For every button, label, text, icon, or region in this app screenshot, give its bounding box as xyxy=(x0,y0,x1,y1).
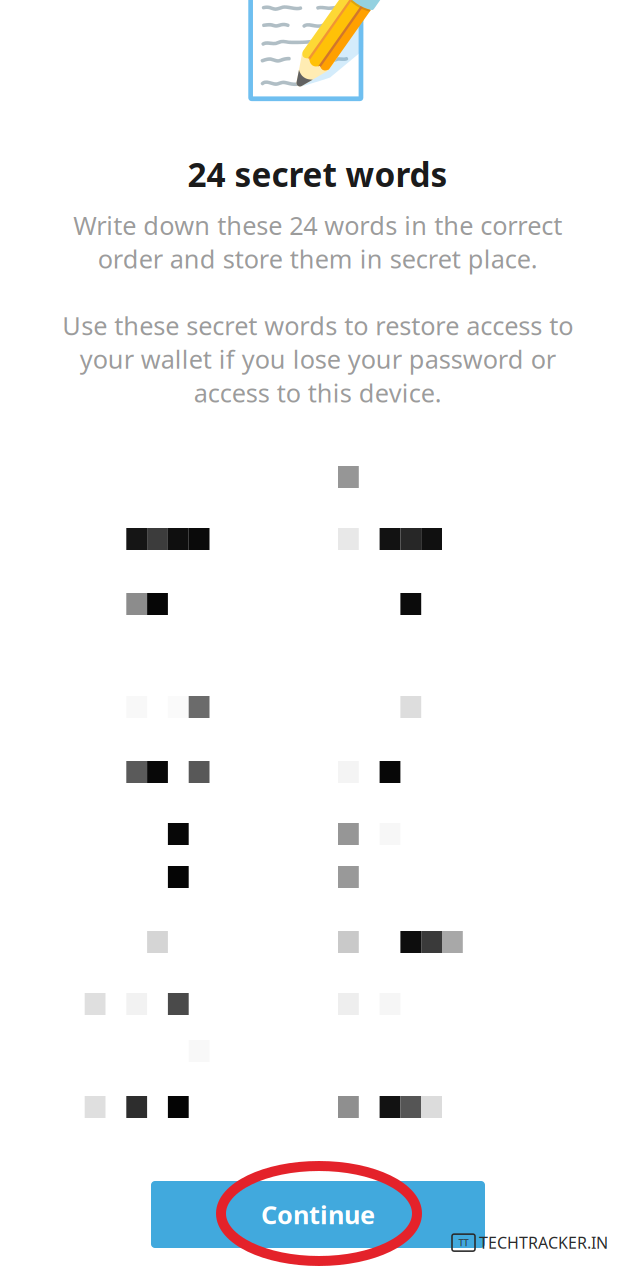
staticText: 📝 xyxy=(238,0,396,104)
staticText: Write down these 24 words in the correct… xyxy=(73,208,562,276)
staticText: Continue xyxy=(261,1198,375,1231)
button[interactable]: Continue xyxy=(151,1181,485,1248)
staticText: 24 secret words xyxy=(187,152,447,196)
staticText: Use these secret words to restore access… xyxy=(62,308,573,409)
staticText: TT xyxy=(458,1236,468,1249)
staticText: TECHTRACKER.IN xyxy=(479,1232,608,1253)
